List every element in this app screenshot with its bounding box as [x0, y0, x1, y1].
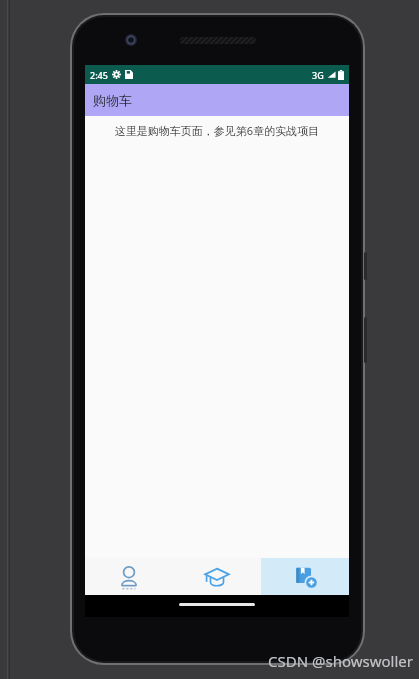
button[interactable]: 个人中心	[85, 558, 173, 595]
staticText: CSDN @showswoller	[268, 651, 413, 671]
staticText: 购物车	[93, 92, 132, 108]
staticText: 3G	[312, 69, 324, 81]
staticText: 这里是购物车页面，参见第6章的实战项目	[85, 123, 349, 138]
button[interactable]: 学习	[173, 558, 261, 595]
button[interactable]: 购物车	[85, 84, 349, 116]
button[interactable]: 购物车	[261, 558, 349, 595]
staticText: 2:45	[90, 69, 108, 81]
